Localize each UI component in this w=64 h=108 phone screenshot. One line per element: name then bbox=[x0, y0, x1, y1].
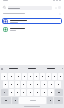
button[interactable] bbox=[4, 65, 22, 72]
button[interactable] bbox=[3, 11, 61, 16]
button[interactable] bbox=[15, 89, 20, 96]
button[interactable]: Voice input bbox=[0, 65, 4, 72]
button[interactable] bbox=[15, 81, 20, 88]
button[interactable] bbox=[40, 73, 45, 80]
button[interactable] bbox=[48, 89, 54, 96]
button[interactable] bbox=[52, 73, 57, 80]
button[interactable] bbox=[3, 18, 61, 24]
button[interactable] bbox=[21, 89, 26, 96]
button[interactable] bbox=[22, 65, 41, 72]
button[interactable] bbox=[55, 81, 61, 88]
button[interactable] bbox=[41, 65, 60, 72]
button[interactable] bbox=[41, 89, 47, 96]
button[interactable] bbox=[22, 73, 27, 80]
button[interactable] bbox=[9, 89, 14, 96]
button[interactable]: More options bbox=[54, 6, 57, 9]
button[interactable] bbox=[12, 97, 18, 104]
button[interactable] bbox=[9, 81, 14, 88]
button[interactable] bbox=[3, 26, 61, 32]
button[interactable]: Symbols bbox=[1, 97, 11, 104]
button[interactable] bbox=[28, 73, 33, 80]
button[interactable] bbox=[34, 89, 40, 96]
button[interactable] bbox=[21, 81, 26, 88]
button[interactable] bbox=[46, 73, 51, 80]
button[interactable] bbox=[3, 81, 8, 88]
button[interactable]: Enter bbox=[54, 97, 63, 104]
button[interactable] bbox=[27, 81, 33, 88]
button[interactable] bbox=[34, 73, 39, 80]
button[interactable] bbox=[1, 73, 7, 80]
button[interactable]: Expand suggestions bbox=[60, 65, 64, 72]
button[interactable] bbox=[8, 73, 14, 80]
button[interactable]: Backspace bbox=[55, 89, 63, 96]
button[interactable]: Shift bbox=[1, 89, 8, 96]
button[interactable] bbox=[34, 81, 40, 88]
button[interactable] bbox=[48, 81, 54, 88]
button[interactable] bbox=[47, 97, 53, 104]
button[interactable] bbox=[41, 81, 47, 88]
button[interactable] bbox=[27, 89, 33, 96]
button[interactable] bbox=[58, 73, 63, 80]
button[interactable]: More options bbox=[3, 4, 61, 11]
button[interactable] bbox=[15, 73, 21, 80]
button[interactable]: Space bbox=[19, 97, 46, 104]
